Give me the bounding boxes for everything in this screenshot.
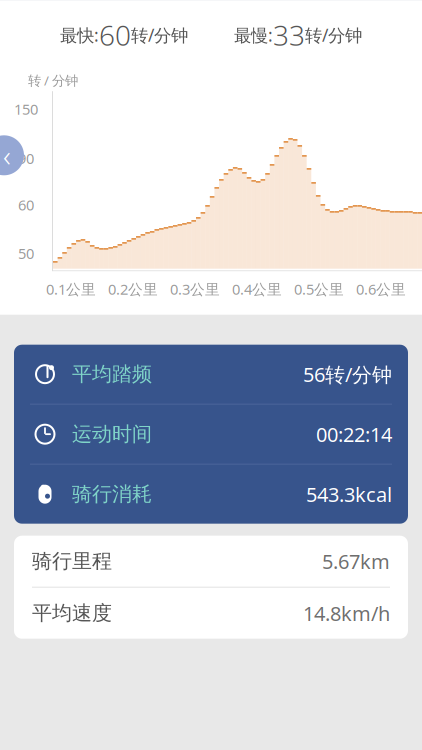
staticText: 0.5公里 [294,279,344,299]
staticText: 最快: [60,23,99,46]
staticText: 0.3公里 [170,279,220,299]
staticText: 150 [14,99,38,119]
staticText: 60 [99,16,131,53]
staticText: 56转/分钟 [303,361,392,387]
button[interactable]: 平均踏频 [14,345,408,404]
staticText: 骑行消耗 [72,482,152,506]
staticText: 转/分钟 [131,23,188,46]
staticText: ‹ [3,136,11,175]
staticText: 5.67km [322,548,390,574]
button[interactable]: Previous [0,135,24,175]
staticText: 60 [18,195,34,215]
staticText: 33 [273,16,305,53]
staticText: 0.2公里 [108,279,158,299]
staticText: 转/分钟 [305,23,362,46]
button[interactable]: 骑行消耗 [14,465,408,524]
staticText: 543.3kcal [306,481,392,507]
staticText: 平均速度 [32,601,112,625]
staticText: 平均踏频 [72,362,152,386]
staticText: 90 [18,149,34,168]
staticText: 07月11日 [174,0,248,2]
staticText: 运动时间 [72,422,152,446]
button[interactable]: 平均速度 [14,588,408,639]
button[interactable]: 运动时间 [14,405,408,464]
staticText: 0.4公里 [232,279,282,299]
staticText: 最慢: [234,23,273,46]
staticText: ‹ [18,0,30,5]
staticText: 00:22:14 [316,421,392,447]
staticText: 转 / 分钟 [28,71,78,89]
staticText: 14.8km/h [303,600,390,626]
staticText: 0.1公里 [46,279,96,299]
staticText: 骑行里程 [32,549,112,573]
staticText: 0.6公里 [356,279,406,299]
staticText: 50 [18,244,34,263]
button[interactable]: 骑行里程 [14,536,408,587]
